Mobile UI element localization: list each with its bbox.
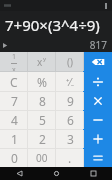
- button[interactable]: (): [56, 52, 84, 71]
- button[interactable]: .: [56, 149, 84, 167]
- staticText: 6: [67, 112, 74, 128]
- button[interactable]: Minus: [84, 111, 112, 129]
- button[interactable]: 1: [0, 52, 28, 71]
- staticText: 1: [12, 52, 17, 62]
- staticText: x: [37, 55, 43, 69]
- button[interactable]: 8: [28, 92, 56, 110]
- button[interactable]: Multiply: [84, 92, 112, 110]
- button[interactable]: %: [28, 72, 56, 91]
- button[interactable]: Divide: [84, 72, 112, 91]
- button[interactable]: Plus: [84, 130, 112, 148]
- button[interactable]: Home: [38, 167, 75, 180]
- button[interactable]: Back: [0, 167, 38, 180]
- staticText: 00: [36, 151, 48, 165]
- staticText: ⁺⁄₋: [66, 75, 75, 89]
- button[interactable]: 00: [28, 149, 56, 167]
- button[interactable]: 1: [0, 130, 28, 148]
- button[interactable]: Backspace: [84, 52, 112, 71]
- button[interactable]: 7: [0, 92, 28, 110]
- staticText: (): [67, 55, 73, 69]
- staticText: .: [68, 150, 72, 166]
- button[interactable]: 5: [28, 111, 56, 129]
- staticText: %: [37, 74, 47, 90]
- staticText: 1: [11, 131, 18, 147]
- button[interactable]: 0: [0, 149, 28, 167]
- staticText: 9: [67, 93, 74, 109]
- button[interactable]: Equals: [84, 149, 112, 167]
- staticText: 7+90×(3^4÷9): [5, 15, 100, 35]
- button[interactable]: Expand history: [3, 43, 8, 48]
- staticText: 8: [39, 93, 46, 109]
- staticText: y: [43, 55, 47, 63]
- button[interactable]: 2: [28, 130, 56, 148]
- staticText: 3: [67, 131, 74, 147]
- staticText: 5: [39, 112, 46, 128]
- button[interactable]: 6: [56, 111, 84, 129]
- button[interactable]: 4: [0, 111, 28, 129]
- button[interactable]: x: [28, 52, 56, 71]
- staticText: C: [10, 74, 18, 90]
- staticText: x: [12, 65, 16, 71]
- button[interactable]: 3: [56, 130, 84, 148]
- button[interactable]: ⁺⁄₋: [56, 72, 84, 91]
- button[interactable]: C: [0, 72, 28, 91]
- staticText: 4: [11, 112, 18, 128]
- staticText: 817: [89, 38, 107, 52]
- staticText: 0: [11, 150, 18, 166]
- staticText: 2: [39, 131, 46, 147]
- button[interactable]: Recents: [75, 167, 112, 180]
- staticText: 7: [11, 93, 18, 109]
- button[interactable]: 9: [56, 92, 84, 110]
